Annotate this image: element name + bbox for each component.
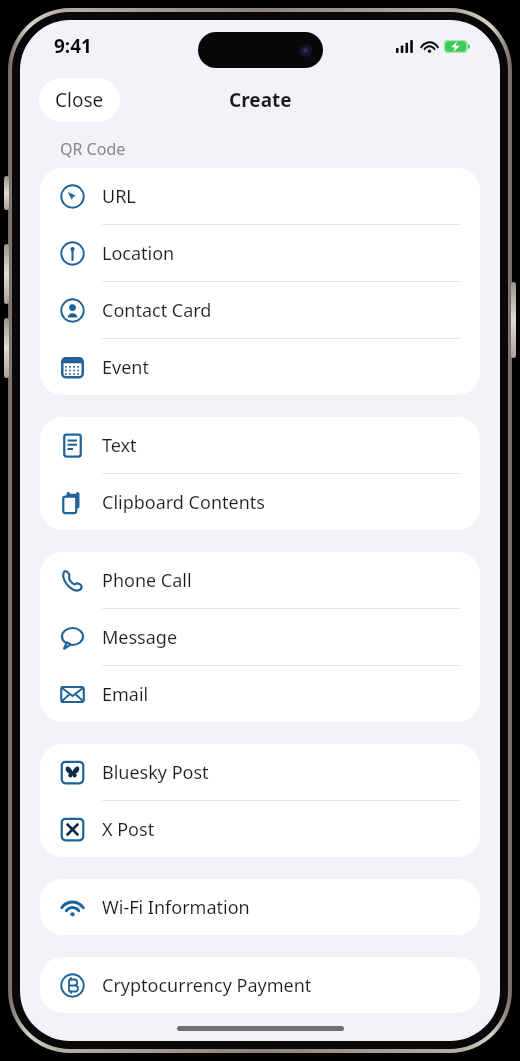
button[interactable]: Text xyxy=(40,417,480,473)
staticText: Event xyxy=(102,355,149,380)
button[interactable]: Email xyxy=(40,666,480,722)
staticText: Wi-Fi Information xyxy=(102,895,250,920)
button[interactable]: Clipboard Contents xyxy=(40,474,480,530)
staticText: Message xyxy=(102,625,178,650)
staticText: QR Code xyxy=(60,138,126,160)
staticText: Cryptocurrency Payment xyxy=(102,973,312,998)
staticText: 9:41 xyxy=(54,33,92,59)
staticText: Bluesky Post xyxy=(102,760,209,785)
button[interactable]: Event xyxy=(40,339,480,395)
staticText: Phone Call xyxy=(102,568,192,593)
button[interactable]: Cryptocurrency Payment xyxy=(40,957,480,1013)
button[interactable]: URL xyxy=(40,168,480,224)
button[interactable]: Close xyxy=(39,78,120,122)
staticText: Email xyxy=(102,682,149,707)
button[interactable]: Message xyxy=(40,609,480,665)
staticText: Location xyxy=(102,241,175,266)
staticText: X Post xyxy=(102,817,155,842)
staticText: Clipboard Contents xyxy=(102,490,265,515)
button[interactable]: Phone Call xyxy=(40,552,480,608)
button[interactable]: X Post xyxy=(40,801,480,857)
staticText: Create xyxy=(229,87,292,113)
staticText: Text xyxy=(102,433,137,458)
button[interactable]: Wi-Fi Information xyxy=(40,879,480,935)
button[interactable]: Location xyxy=(40,225,480,281)
button[interactable]: Contact Card xyxy=(40,282,480,338)
button[interactable]: Bluesky Post xyxy=(40,744,480,800)
staticText: Contact Card xyxy=(102,298,212,323)
staticText: Close xyxy=(55,87,104,113)
staticText: URL xyxy=(102,184,136,209)
